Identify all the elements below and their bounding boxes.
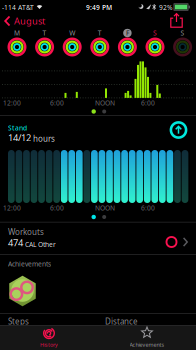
staticText: 14/12	[8, 131, 31, 144]
staticText: NOON	[95, 203, 115, 212]
button[interactable]: Workouts	[0, 226, 196, 252]
staticText: Steps	[8, 316, 29, 327]
staticText: 474	[8, 236, 23, 249]
button[interactable]: W	[62, 29, 82, 57]
staticText: Distance	[105, 316, 138, 327]
staticText: S	[181, 29, 185, 37]
staticText: NOON	[95, 98, 115, 107]
staticText: Stand	[8, 123, 27, 132]
button[interactable]: T	[90, 29, 110, 57]
button[interactable]: F	[117, 29, 137, 57]
staticText: 6:00	[50, 203, 64, 212]
button[interactable]: Achievement	[6, 275, 38, 307]
staticText: M	[14, 29, 20, 37]
staticText: CAL Other	[25, 240, 56, 249]
staticText: -114 AT&T	[2, 3, 34, 12]
staticText: 12:00	[3, 203, 21, 212]
staticText: 92%	[159, 3, 173, 12]
staticText: W	[69, 29, 75, 37]
staticText: Achievements	[8, 259, 51, 268]
button[interactable]: S	[173, 29, 193, 57]
button[interactable]: S	[145, 29, 165, 57]
button[interactable]: M	[7, 29, 27, 57]
button[interactable]: T	[35, 29, 55, 57]
staticText: hours	[33, 133, 55, 144]
staticText: T	[98, 29, 102, 37]
staticText: Workouts	[8, 226, 44, 237]
staticText: 9:49 PM	[86, 3, 112, 12]
staticText: August	[14, 15, 45, 27]
staticText: 6:00	[141, 98, 155, 107]
staticText: 6:00	[50, 98, 64, 107]
staticText: F	[126, 29, 129, 37]
staticText: Achievements	[129, 341, 164, 348]
button[interactable]: Share	[170, 13, 183, 28]
staticText: History	[40, 341, 58, 348]
button[interactable]: Achievements	[98, 325, 196, 350]
button[interactable]: Back	[4, 13, 45, 29]
staticText: S	[153, 29, 157, 37]
staticText: T	[43, 29, 47, 37]
staticText: 6:00	[141, 203, 155, 212]
staticText: 12:00	[3, 98, 21, 107]
button[interactable]: History	[0, 325, 98, 350]
